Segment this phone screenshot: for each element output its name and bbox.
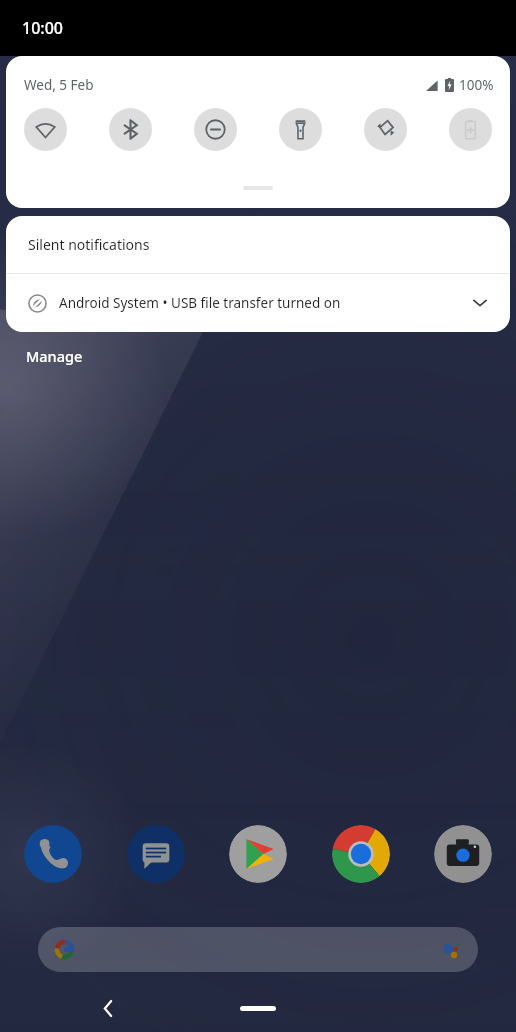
button[interactable]: Chrome	[332, 825, 390, 883]
button[interactable]: Battery saver	[449, 108, 492, 151]
button[interactable]: Messages	[127, 825, 185, 883]
button[interactable]: Home	[240, 1006, 276, 1011]
staticText: Silent notifications	[28, 235, 150, 254]
button[interactable]: Do not disturb	[194, 108, 237, 151]
button[interactable]: Flashlight	[279, 108, 322, 151]
button[interactable]	[38, 927, 478, 972]
button[interactable]: Camera	[434, 825, 492, 883]
staticText: Android System • USB file transfer turne…	[59, 294, 341, 312]
staticText: Wed, 5 Feb	[24, 76, 94, 94]
button[interactable]: Android System • USB file transfer turne…	[6, 274, 510, 332]
button[interactable]: Phone	[24, 825, 82, 883]
staticText: 10:00	[22, 17, 63, 39]
button[interactable]: Wi-Fi	[24, 108, 67, 151]
button[interactable]: Expand notification	[466, 289, 494, 317]
button[interactable]: Back	[90, 990, 126, 1026]
button[interactable]: Bluetooth	[109, 108, 152, 151]
staticText: Manage	[26, 346, 83, 366]
button[interactable]: Manage	[26, 346, 83, 366]
button[interactable]: Auto-rotate	[364, 108, 407, 151]
button[interactable]: Silent notifications	[6, 216, 510, 273]
button[interactable]: Play Store	[229, 825, 287, 883]
staticText: 100%	[459, 76, 494, 94]
